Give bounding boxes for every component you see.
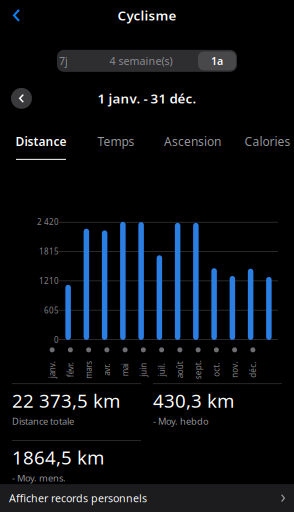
staticText: - Moy. hebdo [153,415,209,427]
staticText: 4 semaine(s) [109,54,172,68]
button[interactable]: Temps [78,135,153,161]
staticText: 0 [54,335,59,345]
staticText: nov. [227,365,243,375]
button[interactable]: Previous period [11,88,32,109]
staticText: oct. [209,365,223,375]
staticText: Afficher records personnels [9,491,147,505]
button[interactable]: 7j [57,50,85,72]
staticText: mai [119,365,132,375]
staticText: Ascension [164,133,221,149]
button[interactable]: Afficher records personnels [0,484,294,512]
staticText: 7j [59,54,68,68]
button[interactable]: 4 semaine(s) [85,50,197,72]
staticText: 605 [44,305,59,316]
staticText: avr. [101,365,113,375]
staticText: août [171,365,188,375]
staticText: déc. [245,365,261,375]
button[interactable]: Ascension [153,135,231,161]
staticText: 1864,5 km [12,445,104,470]
staticText: 1815 [39,246,59,257]
staticText: 2 420 [37,217,59,227]
staticText: 1 janv. - 31 déc. [97,89,196,107]
staticText: 1210 [39,276,59,286]
staticText: 22 373,5 km [12,388,120,413]
button[interactable]: Distance [3,135,78,161]
button[interactable]: Back [0,2,30,29]
staticText: juin [136,365,150,375]
staticText: Temps [97,133,134,149]
staticText: févr. [63,365,78,375]
staticText: Calories [244,133,290,149]
staticText: 1a [211,54,223,68]
staticText: juil. [155,365,168,375]
staticText: Cyclisme [117,6,176,24]
button[interactable]: Calories [231,135,294,161]
staticText: janv. [44,365,61,375]
staticText: Distance totale [12,415,74,427]
staticText: sept. [189,365,208,375]
staticText: - Moy. mens. [12,472,66,484]
staticText: Distance [15,133,66,149]
staticText: mars [80,365,98,375]
button[interactable]: 1a [197,50,237,72]
staticText: 430,3 km [153,388,234,413]
